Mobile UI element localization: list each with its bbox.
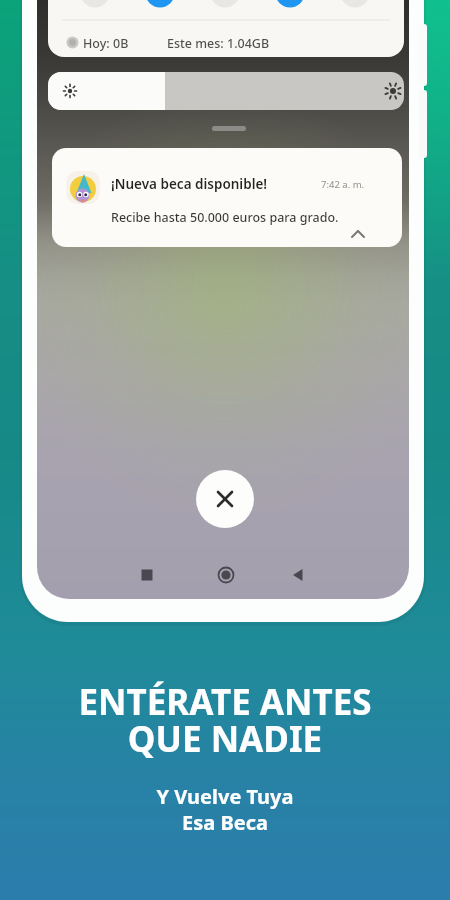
staticText: Y Vuelve Tuya Esa Beca: [0, 783, 450, 836]
button[interactable]: [196, 470, 254, 528]
staticText: ENTÉRATE ANTES QUE NADIE: [0, 678, 450, 762]
button[interactable]: [284, 560, 314, 590]
button[interactable]: [211, 560, 241, 590]
staticText: ¡Nueva beca disponible!: [111, 175, 268, 193]
staticText: Hoy: 0B: [83, 35, 129, 52]
button[interactable]: [132, 560, 162, 590]
staticText: Este mes: 1.04GB: [167, 35, 270, 52]
staticText: Recibe hasta 50.000 euros para grado.: [111, 209, 339, 226]
staticText: 7:42 a. m.: [321, 178, 365, 191]
button[interactable]: ¡Nueva beca disponible!: [52, 148, 402, 247]
button[interactable]: Hoy: 0B: [48, 0, 404, 57]
button[interactable]: [48, 72, 404, 110]
